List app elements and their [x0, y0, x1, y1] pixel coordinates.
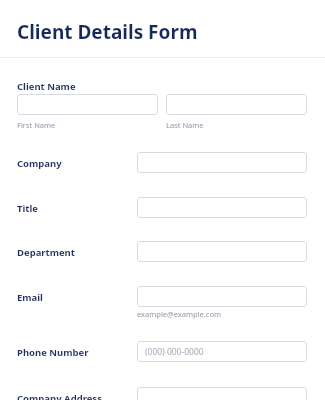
button[interactable]: Company	[17, 157, 62, 170]
staticText: (000) 000-0000	[145, 346, 204, 358]
staticText: example@example.com	[137, 309, 221, 319]
staticText: Company	[17, 157, 62, 170]
button[interactable]	[166, 94, 307, 115]
staticText: Client Details Form	[17, 19, 198, 45]
staticText: Department	[17, 246, 75, 259]
staticText: Title	[17, 202, 38, 215]
staticText: Company Address	[17, 392, 102, 400]
staticText: Client Name	[17, 80, 76, 93]
button[interactable]: Client Details Form	[17, 19, 198, 45]
button[interactable]: Email	[17, 291, 43, 304]
button[interactable]	[137, 387, 307, 400]
button[interactable]	[137, 152, 307, 173]
staticText: Email	[17, 291, 43, 304]
button[interactable]	[137, 286, 307, 307]
button[interactable]	[137, 241, 307, 262]
button[interactable]: Department	[17, 246, 75, 259]
staticText: Phone Number	[17, 346, 89, 359]
staticText: Last Name	[166, 120, 204, 130]
staticText: First Name	[17, 120, 56, 130]
button[interactable]: Title	[17, 202, 38, 215]
button[interactable]	[137, 197, 307, 218]
button[interactable]	[17, 94, 158, 115]
button[interactable]: (000) 000-0000	[137, 341, 307, 362]
button[interactable]: Company Address	[17, 392, 102, 400]
button[interactable]: Phone Number	[17, 346, 89, 359]
